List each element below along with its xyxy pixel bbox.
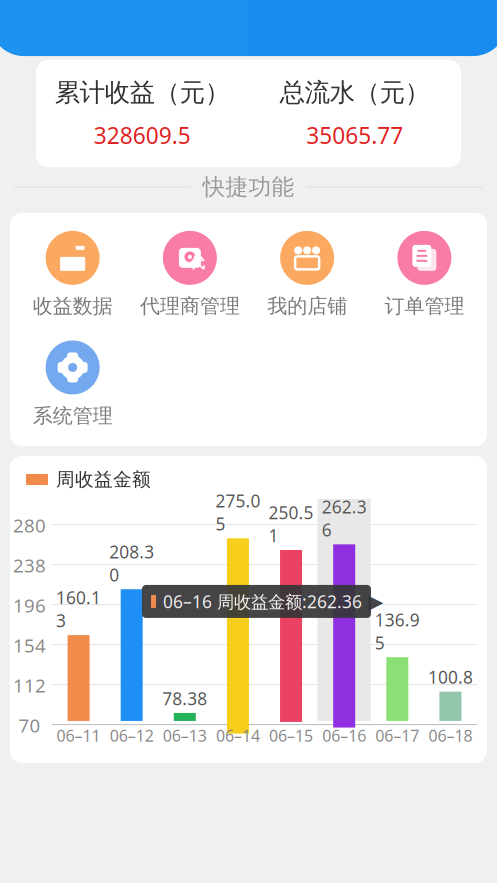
staticText: 328609.5 xyxy=(94,120,191,150)
staticText: 136.95 xyxy=(375,608,420,654)
staticText: 总流水（元） xyxy=(280,77,430,108)
staticText: 06–18 xyxy=(428,725,472,746)
button[interactable]: 订单管理 xyxy=(366,227,483,322)
staticText: ▶ xyxy=(368,590,383,613)
staticText: 154 xyxy=(13,633,46,658)
staticText: 周收益金额 xyxy=(56,468,151,491)
button[interactable]: 收益数据 xyxy=(14,227,131,322)
staticText: 06–17 xyxy=(375,725,419,746)
staticText: 70 xyxy=(18,713,40,738)
button[interactable]: 代 xyxy=(131,227,248,322)
staticText: 订单管理 xyxy=(384,294,464,318)
staticText: 06–13 xyxy=(163,725,207,746)
staticText: 06–15 xyxy=(269,725,313,746)
staticText: 208.30 xyxy=(109,540,154,586)
staticText: 06–14 xyxy=(216,725,260,746)
staticText: 06–12 xyxy=(110,725,154,746)
staticText: 代理商管理 xyxy=(140,294,240,318)
staticText: 160.13 xyxy=(56,586,101,632)
staticText: 06–16 周收益金额:262.36 xyxy=(163,590,362,613)
staticText: 累计收益（元） xyxy=(55,77,230,108)
staticText: 我的店铺 xyxy=(267,294,347,318)
staticText: 06–11 xyxy=(57,725,101,746)
staticText: 280 xyxy=(13,513,46,538)
staticText: 快捷功能 xyxy=(202,173,294,201)
staticText: 35065.77 xyxy=(306,120,403,150)
staticText: 100.8 xyxy=(428,666,473,689)
staticText: 代 xyxy=(190,254,205,272)
staticText: 262.36 xyxy=(322,495,367,541)
staticText: 275.05 xyxy=(215,489,260,535)
button[interactable]: 系统管理 xyxy=(14,336,131,432)
staticText: 250.51 xyxy=(269,501,314,547)
staticText: 系统管理 xyxy=(33,403,113,428)
staticText: 78.38 xyxy=(162,687,207,710)
button[interactable]: 我的店铺 xyxy=(248,227,366,322)
staticText: 238 xyxy=(13,553,46,578)
staticText: 196 xyxy=(13,593,46,618)
staticText: 收益数据 xyxy=(33,294,113,318)
staticText: 06–16 xyxy=(322,725,366,746)
staticText: 112 xyxy=(13,673,46,698)
